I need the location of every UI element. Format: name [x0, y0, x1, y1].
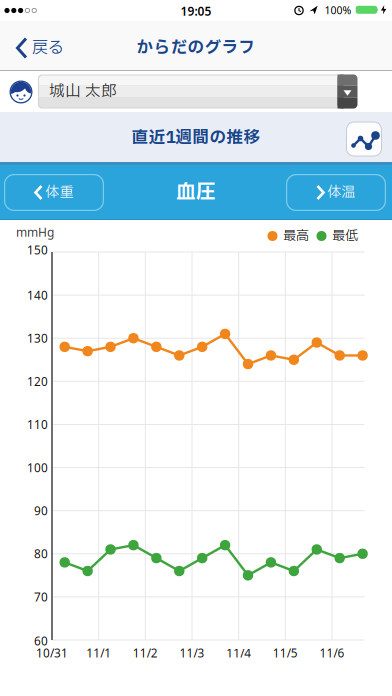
- button[interactable]: 戻る: [16, 23, 64, 73]
- staticText: 70: [34, 589, 48, 605]
- staticText: 11/5: [273, 645, 298, 661]
- button[interactable]: グラフ切替: [346, 121, 382, 156]
- staticText: からだのグラフ: [136, 36, 255, 60]
- staticText: 戻る: [32, 36, 64, 60]
- staticText: 10/31: [36, 645, 68, 661]
- staticText: 11/3: [179, 645, 204, 661]
- staticText: 城山 太郎: [49, 80, 117, 103]
- staticText: 11/1: [86, 645, 111, 661]
- staticText: 100: [27, 459, 48, 476]
- staticText: 血圧: [176, 178, 216, 207]
- staticText: 体温: [327, 182, 355, 203]
- button[interactable]: 体重: [4, 174, 104, 211]
- staticText: mmHg: [16, 224, 54, 240]
- staticText: 19:05: [180, 3, 211, 19]
- button[interactable]: 城山 太郎: [38, 74, 357, 108]
- staticText: 11/2: [133, 645, 158, 661]
- staticText: 最高: [283, 226, 309, 246]
- staticText: 150: [27, 242, 48, 258]
- staticText: 体重: [45, 182, 73, 203]
- staticText: 130: [27, 330, 48, 346]
- staticText: 11/6: [319, 645, 344, 661]
- staticText: 最低: [332, 226, 358, 246]
- staticText: 120: [27, 373, 48, 389]
- staticText: 90: [34, 503, 48, 519]
- staticText: 80: [34, 546, 48, 562]
- staticText: 11/4: [226, 645, 251, 661]
- staticText: 140: [27, 287, 48, 303]
- staticText: 100%: [324, 3, 351, 17]
- staticText: 60: [34, 633, 48, 649]
- button[interactable]: 体温: [286, 174, 386, 211]
- staticText: 110: [27, 416, 48, 432]
- staticText: 直近1週間の推移: [131, 126, 260, 150]
